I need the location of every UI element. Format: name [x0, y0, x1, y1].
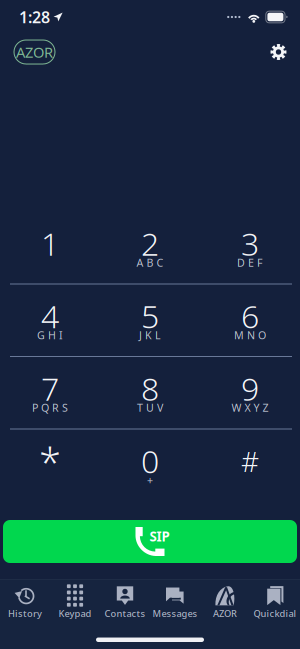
staticText: J K L — [139, 328, 161, 342]
staticText: 7 — [41, 367, 59, 409]
staticText: 8 — [141, 367, 159, 409]
staticText: G H I — [37, 328, 63, 342]
button[interactable]: Messages — [150, 586, 200, 626]
button[interactable]: * — [0, 429, 100, 501]
staticText: AZOR — [213, 607, 237, 620]
button[interactable]: 3 — [200, 212, 300, 283]
staticText: 1 — [41, 222, 59, 264]
button[interactable]: Quickdial — [250, 586, 300, 626]
button[interactable]: Contacts — [100, 586, 150, 626]
staticText: AZOR — [16, 42, 53, 62]
staticText: Keypad — [58, 607, 91, 620]
staticText: + — [147, 473, 153, 487]
staticText: T U V — [137, 400, 163, 415]
button[interactable]: AZOR — [200, 586, 250, 626]
staticText: 1:28 — [19, 6, 50, 28]
button[interactable]: 1 — [0, 212, 100, 283]
button[interactable]: AZOR — [14, 40, 55, 64]
staticText: Messages — [152, 607, 197, 620]
staticText: Quickdial — [253, 607, 296, 620]
staticText: 6 — [241, 294, 259, 337]
button[interactable]: 4 — [0, 284, 100, 356]
button[interactable]: # — [200, 429, 300, 501]
button[interactable]: Settings — [263, 37, 293, 67]
staticText: # — [241, 442, 259, 480]
button[interactable]: 0 — [100, 429, 200, 501]
staticText: W X Y Z — [231, 400, 268, 415]
button[interactable]: 2 — [100, 212, 200, 283]
staticText: 0 — [141, 439, 159, 482]
button[interactable]: 6 — [200, 284, 300, 356]
staticText: SIP — [149, 527, 169, 545]
button[interactable]: 5 — [100, 284, 200, 356]
button[interactable]: Call with SIP — [3, 520, 297, 563]
staticText: M N O — [234, 328, 266, 342]
button[interactable]: 9 — [200, 357, 300, 428]
staticText: * — [39, 435, 61, 489]
staticText: 3 — [241, 222, 259, 264]
staticText: 5 — [141, 294, 159, 337]
staticText: A B C — [136, 255, 163, 270]
staticText: 2 — [141, 222, 159, 264]
button[interactable]: History — [0, 586, 50, 626]
staticText: 4 — [41, 294, 59, 337]
staticText: P Q R S — [32, 400, 68, 415]
staticText: 9 — [241, 367, 259, 409]
staticText: Contacts — [104, 607, 145, 620]
button[interactable]: 7 — [0, 357, 100, 428]
staticText: History — [8, 607, 42, 620]
staticText: D E F — [237, 255, 263, 270]
button[interactable]: 8 — [100, 357, 200, 428]
button[interactable]: Keypad — [50, 586, 100, 626]
